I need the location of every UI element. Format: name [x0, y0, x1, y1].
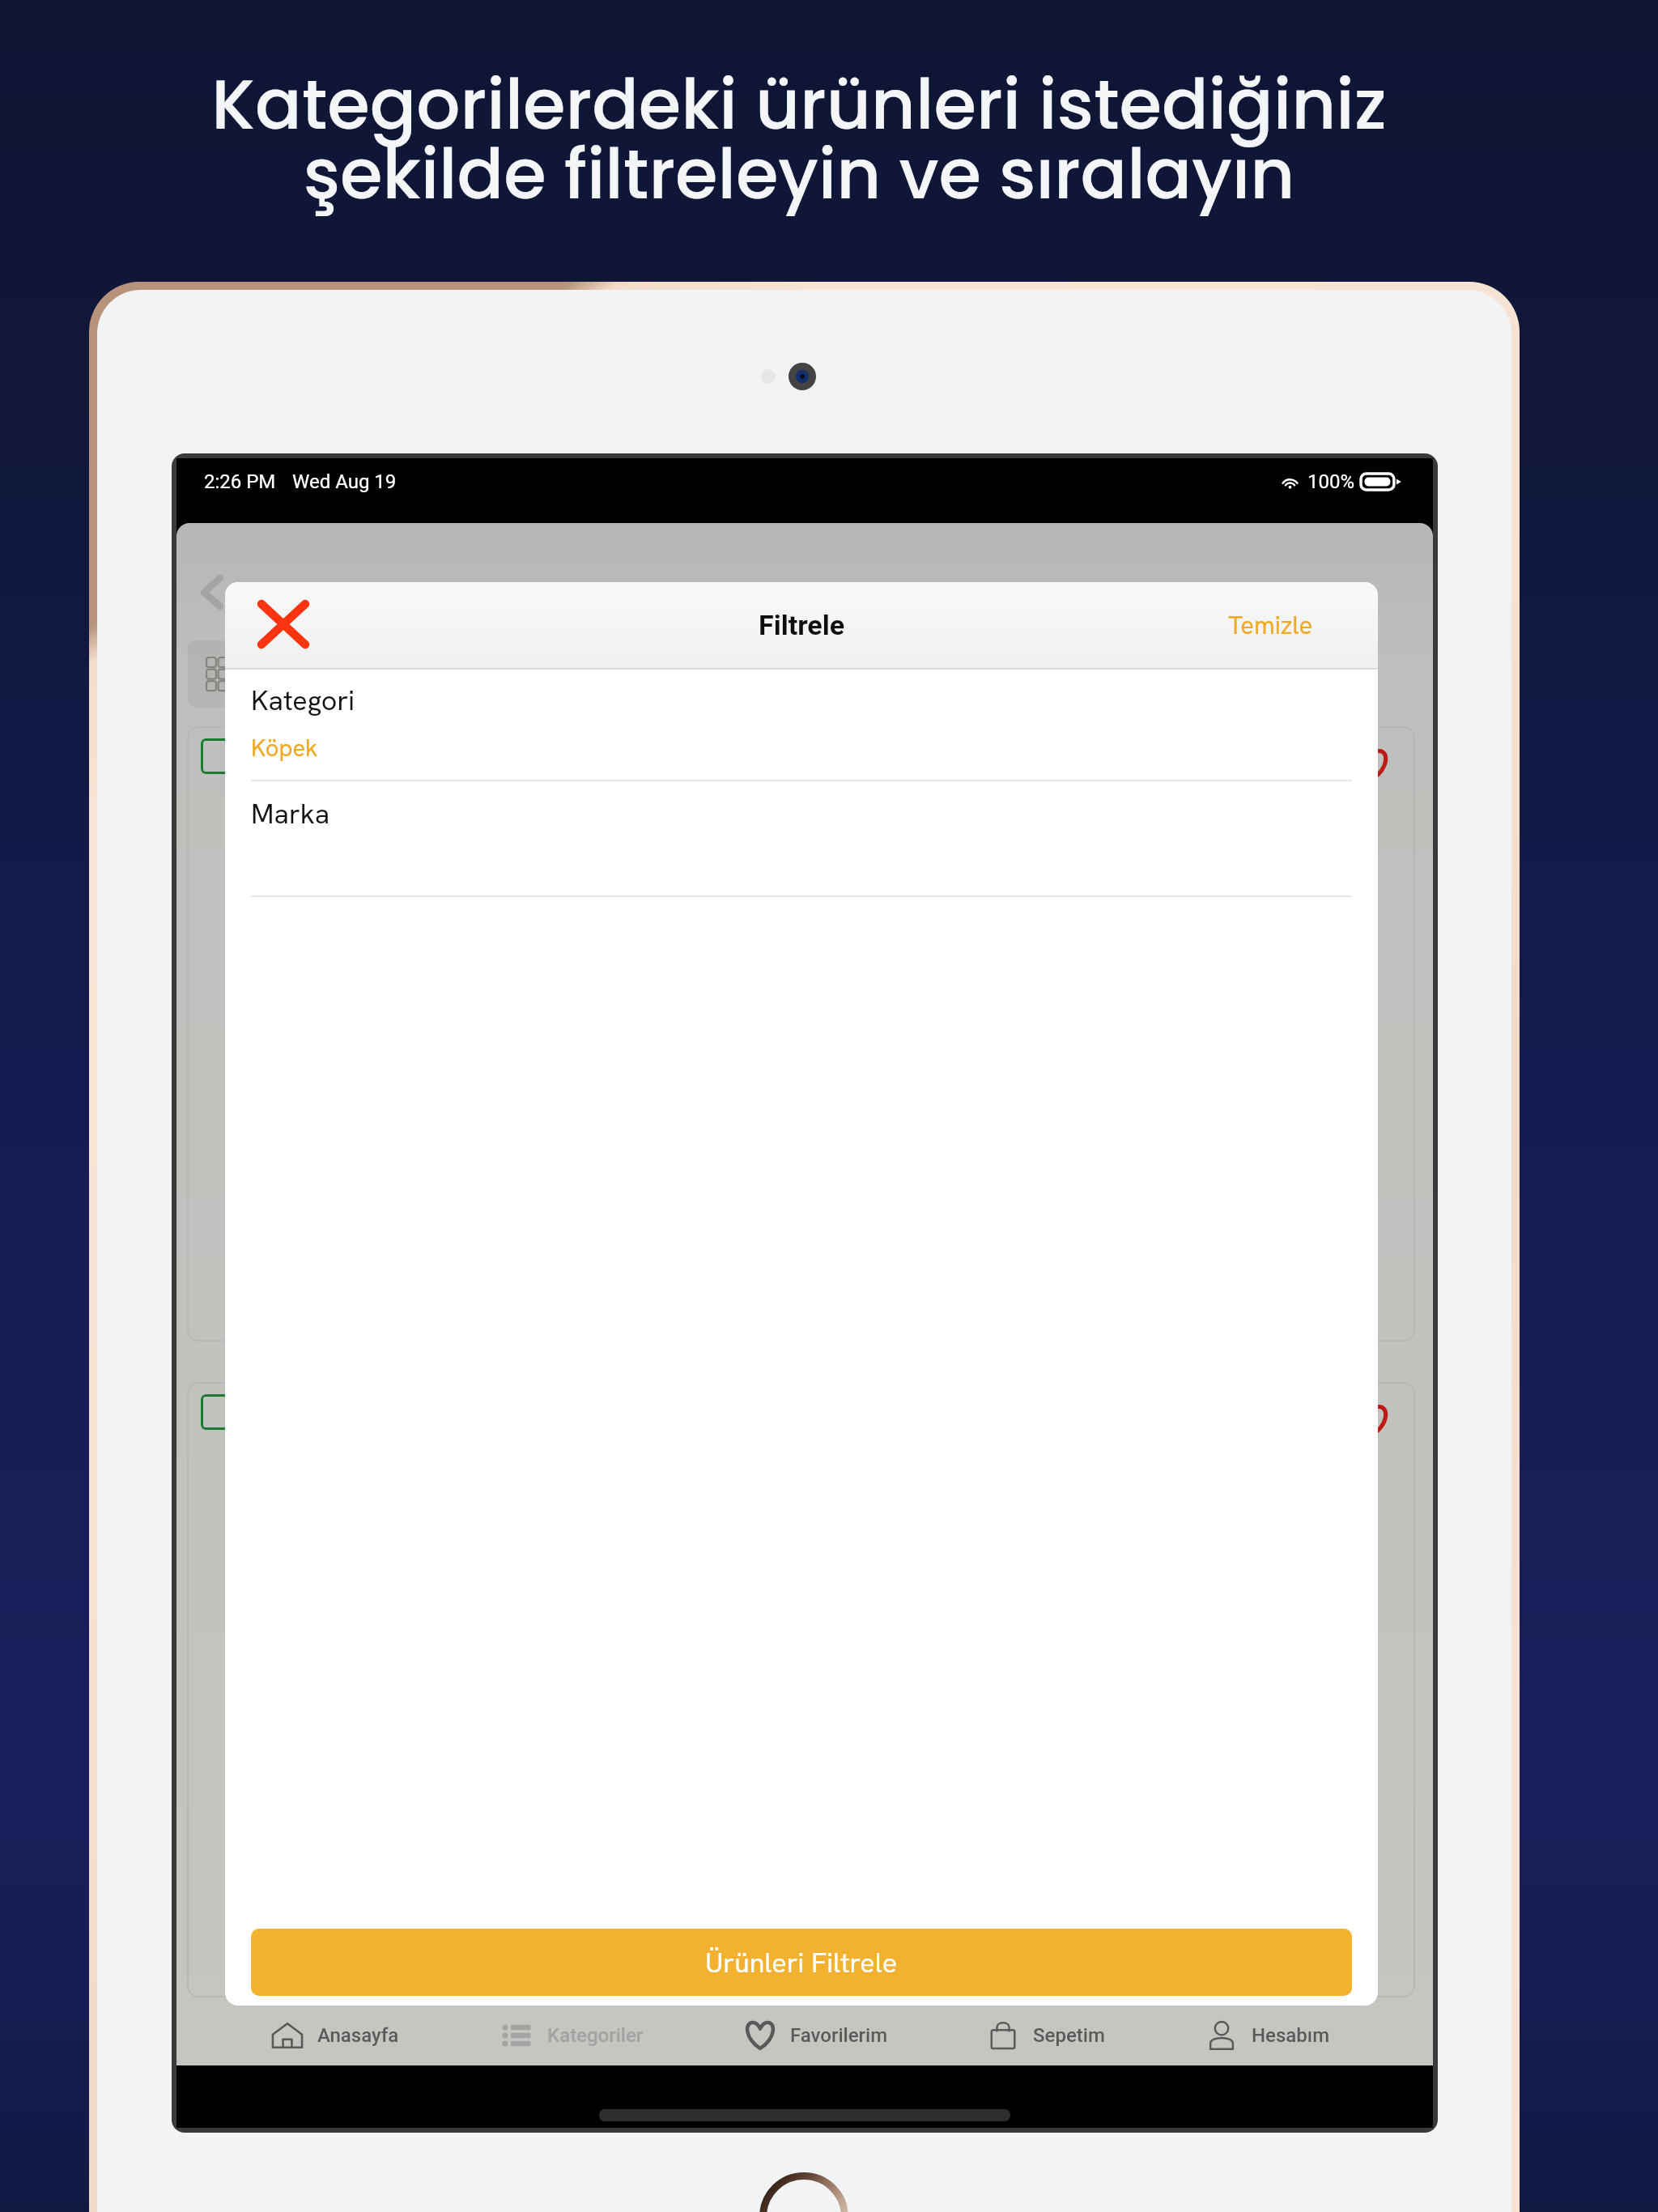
button[interactable]: Kategoriler	[500, 2006, 644, 2065]
staticText: Yeni	[227, 745, 265, 768]
button[interactable]: Yeni	[187, 726, 1415, 1342]
button[interactable]: Anasayfa	[270, 2006, 399, 2065]
staticText: Kategori	[251, 683, 355, 718]
button[interactable]: Köpek	[251, 733, 1352, 780]
staticText: Temizle	[1228, 609, 1313, 641]
staticText: Hesabım	[1252, 2024, 1330, 2047]
button[interactable]: Temizle	[1209, 593, 1378, 657]
button[interactable]: Yeni	[187, 1382, 1415, 1997]
button[interactable]: Izgara gorunumu	[188, 640, 277, 708]
staticText: Kategorilerdeki ürünleri istediğiniz şek…	[0, 57, 1628, 223]
staticText: Köpek	[251, 733, 318, 764]
staticText: Favorilerim	[790, 2024, 888, 2047]
staticText: Ürünleri Filtrele	[705, 1945, 898, 1980]
button[interactable]: Geri	[183, 557, 238, 612]
staticText: Anasayfa	[317, 2024, 399, 2047]
button[interactable]: Ürünleri Filtrele	[251, 1929, 1352, 1996]
staticText: Wed Aug 19	[292, 470, 397, 493]
button[interactable]: Kapat	[238, 583, 322, 667]
staticText: 2:26 PM	[204, 470, 276, 493]
staticText: 100%	[1307, 470, 1355, 493]
button[interactable]: Favorilerim	[743, 2006, 888, 2065]
staticText: Marka	[251, 796, 330, 832]
button[interactable]: Sepetim	[986, 2006, 1105, 2065]
button[interactable]: Hesabım	[1205, 2006, 1330, 2065]
staticText: Kategoriler	[547, 2024, 644, 2047]
staticText: Sepetim	[1033, 2024, 1105, 2047]
staticText: Filtrele	[759, 609, 845, 641]
